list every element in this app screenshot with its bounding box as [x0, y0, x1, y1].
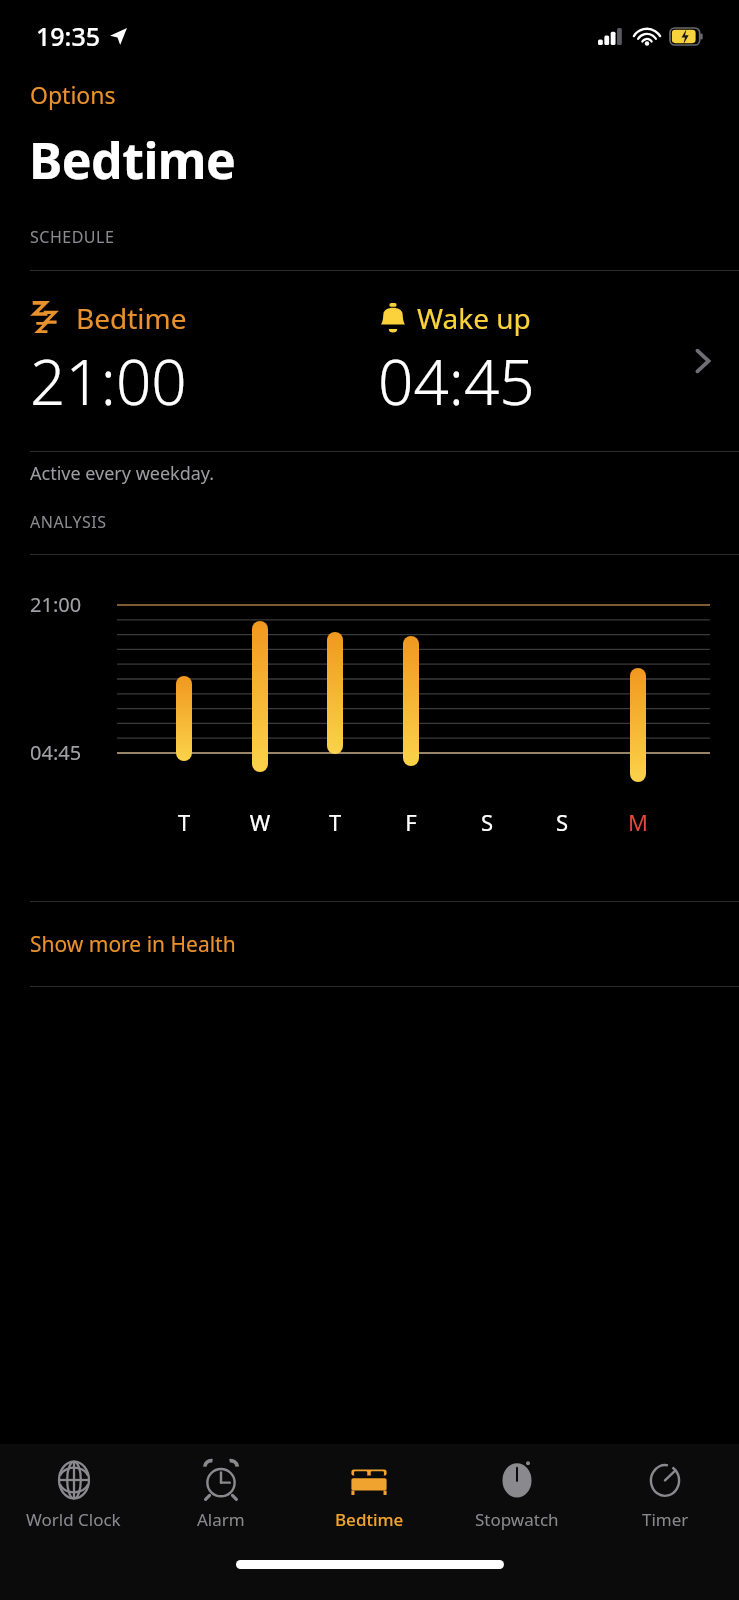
staticText: Wake up — [417, 299, 531, 337]
staticText: M — [626, 807, 650, 837]
staticText: S — [475, 807, 499, 837]
staticText: SCHEDULE — [30, 226, 115, 248]
staticText: W — [248, 807, 272, 837]
staticText: Bedtime — [76, 299, 187, 337]
staticText: 19:35 — [36, 19, 101, 53]
staticText: Show more in Health — [30, 930, 236, 959]
staticText: Stopwatch — [475, 1508, 559, 1531]
staticText: Bedtime — [335, 1508, 404, 1531]
staticText: 21:00 — [30, 339, 187, 423]
staticText: Options — [30, 79, 116, 110]
other: Edit schedule — [695, 347, 711, 375]
button[interactable]: Options — [0, 72, 739, 116]
button[interactable]: Bedtime — [295, 1444, 443, 1556]
button[interactable]: Alarm — [147, 1444, 295, 1556]
staticText: Bedtime — [29, 126, 236, 194]
button[interactable]: Stopwatch — [443, 1444, 591, 1556]
staticText: S — [550, 807, 574, 837]
button[interactable]: World Clock — [0, 1444, 147, 1556]
button[interactable]: Timer — [591, 1444, 739, 1556]
staticText: T — [172, 807, 196, 837]
staticText: Timer — [642, 1508, 689, 1531]
staticText: T — [323, 807, 347, 837]
staticText: Alarm — [197, 1508, 245, 1531]
staticText: 04:45 — [30, 739, 82, 766]
staticText: World Clock — [26, 1508, 121, 1531]
staticText: Active every weekday. — [30, 461, 215, 486]
staticText: 04:45 — [378, 339, 535, 423]
button[interactable]: Bedtime — [0, 271, 739, 451]
staticText: 21:00 — [30, 591, 82, 618]
button[interactable]: Show more in Health — [0, 902, 739, 986]
staticText: ANALYSIS — [30, 511, 107, 533]
staticText: F — [399, 807, 423, 837]
